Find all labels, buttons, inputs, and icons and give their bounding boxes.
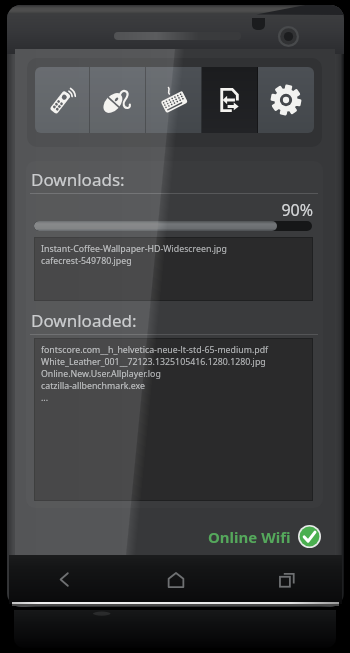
button[interactable]: Settings — [258, 67, 314, 133]
button[interactable]: Mouse — [90, 67, 146, 133]
staticText: cafecrest-549780.jpeg — [41, 255, 132, 267]
button[interactable]: Home — [120, 555, 231, 604]
staticText: Instant-Coffee-Wallpaper-HD-Widescreen.j… — [41, 243, 227, 255]
button[interactable]: File transfer — [202, 67, 258, 133]
staticText: catzilla-allbenchmark.exe — [41, 380, 146, 392]
staticText: Online Wifi — [208, 527, 291, 547]
staticText: Downloads: — [31, 168, 125, 191]
staticText: ... — [41, 392, 49, 404]
staticText: Downloaded: — [31, 309, 137, 332]
button[interactable]: Keyboard — [146, 67, 202, 133]
staticText: 90% — [26, 199, 313, 221]
button[interactable]: Recent apps — [231, 555, 342, 604]
staticText: Online.New.User.Allplayer.log — [41, 368, 161, 380]
button[interactable]: Remote — [35, 67, 90, 133]
button[interactable]: Back — [9, 555, 120, 604]
staticText: fontscore.com__h_helvetica-neue-lt-std-6… — [41, 344, 269, 356]
staticText: White_Leather_001__72123.1325105416.1280… — [41, 356, 266, 368]
